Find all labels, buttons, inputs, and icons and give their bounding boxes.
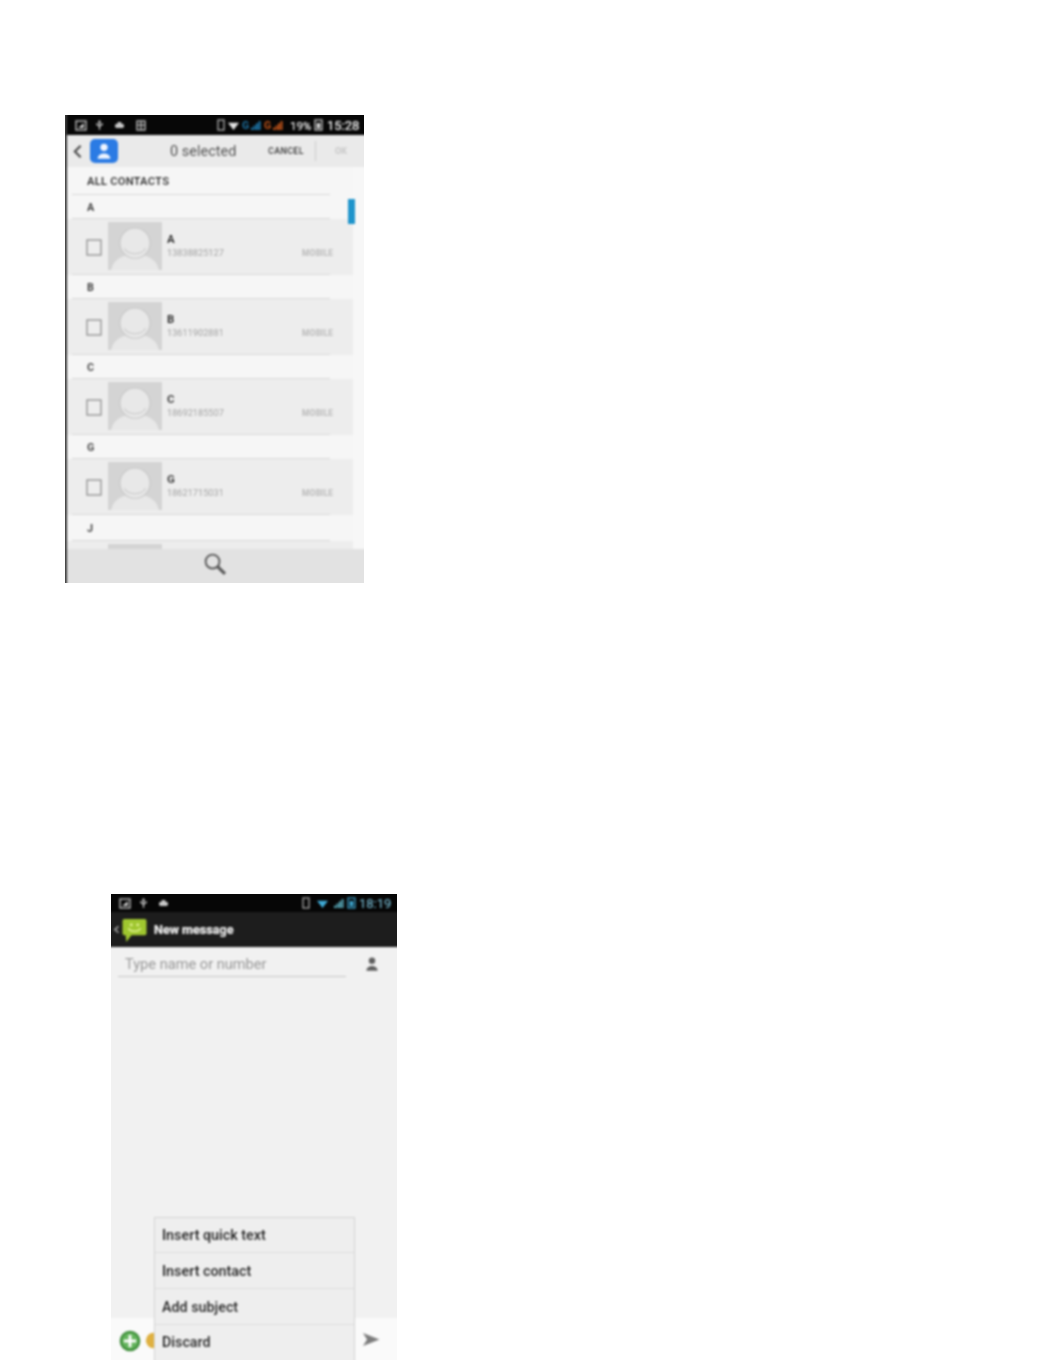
button[interactable]: Back [111, 912, 122, 947]
button[interactable]: Back [65, 135, 89, 167]
staticText: Discard [162, 1334, 211, 1351]
staticText: 13611902881 [167, 327, 224, 338]
staticText: 18:19 [359, 896, 392, 911]
staticText: New message [154, 922, 234, 937]
staticText: J [87, 522, 94, 535]
button[interactable]: Add recipient [359, 951, 385, 977]
button[interactable]: A [65, 219, 353, 275]
staticText: Insert contact [162, 1263, 252, 1280]
button[interactable]: Attach [119, 1330, 141, 1352]
staticText: 13838825127 [167, 247, 224, 258]
staticText: C [167, 392, 175, 405]
staticText: MOBILE [302, 408, 334, 418]
staticText: G [87, 441, 95, 454]
staticText: 18692185507 [167, 407, 224, 418]
staticText: MOBILE [302, 328, 334, 338]
button[interactable]: Contacts [90, 139, 118, 163]
staticText: G [242, 119, 250, 131]
staticText: C [87, 361, 95, 374]
staticText: B [87, 281, 95, 294]
staticText: MOBILE [302, 488, 334, 498]
button[interactable]: Insert quick text [154, 1217, 355, 1253]
staticText: B [167, 312, 175, 325]
staticText: 0 selected [170, 143, 237, 160]
staticText: 19% [290, 119, 312, 132]
staticText: A [87, 201, 95, 214]
staticText: Insert quick text [162, 1227, 266, 1244]
staticText: Type name or number [125, 955, 267, 972]
button[interactable]: Search [65, 549, 364, 583]
staticText: G [264, 119, 272, 131]
staticText: A [167, 232, 175, 245]
button[interactable]: B [65, 299, 353, 355]
staticText: OK [335, 146, 347, 157]
staticText: 18621715031 [167, 487, 224, 498]
button[interactable]: G [65, 459, 353, 515]
staticText: Add subject [162, 1299, 239, 1316]
staticText: MOBILE [302, 248, 334, 258]
button[interactable]: C [65, 379, 353, 435]
staticText: CANCEL [268, 146, 304, 157]
button[interactable]: Insert contact [154, 1253, 355, 1289]
staticText: G [167, 472, 175, 485]
button[interactable]: CANCEL [265, 135, 307, 167]
staticText: 15:28 [327, 118, 360, 133]
button[interactable]: Done [318, 135, 364, 167]
button[interactable]: Add subject [154, 1289, 355, 1325]
button[interactable]: Send [359, 1327, 383, 1351]
button[interactable]: Discard [154, 1325, 355, 1360]
button[interactable]: Insert emoticon [145, 1332, 162, 1349]
staticText: ALL CONTACTS [87, 175, 170, 188]
button[interactable]: Messaging [122, 918, 147, 942]
